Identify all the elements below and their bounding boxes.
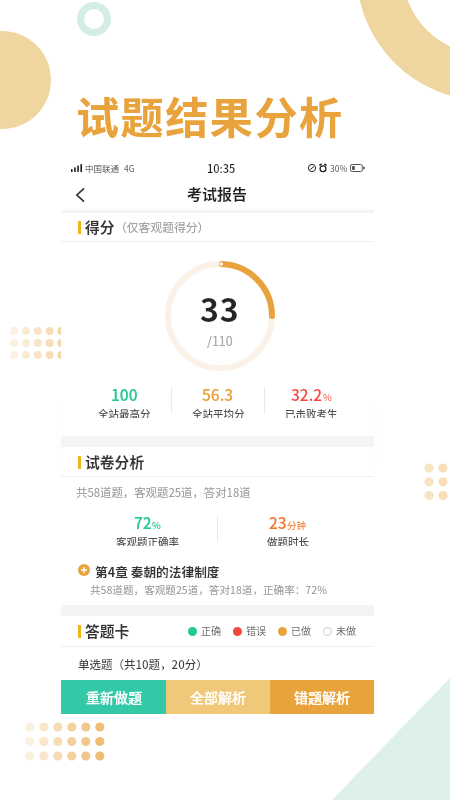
- staticText: 试卷分析: [85, 451, 145, 472]
- staticText: 错误: [246, 623, 267, 638]
- staticText: 已做: [291, 623, 312, 638]
- staticText: 中国联通: [85, 162, 120, 174]
- staticText: 分钟: [287, 518, 307, 532]
- staticText: 共58道题，客观题25道，答对18道，正确率：72%: [90, 582, 327, 597]
- button[interactable]: 重新做题: [61, 680, 166, 714]
- staticText: 正确: [201, 623, 222, 638]
- staticText: 32.2: [291, 383, 323, 405]
- staticText: 客观题正确率: [116, 534, 179, 546]
- staticText: 56.3: [202, 383, 234, 405]
- staticText: 33: [200, 285, 240, 331]
- staticText: 未做: [336, 623, 357, 638]
- staticText: 30%: [330, 162, 348, 174]
- staticText: 10:35: [207, 160, 236, 176]
- staticText: 答题卡: [85, 620, 130, 641]
- staticText: 做题时长: [267, 534, 309, 546]
- staticText: 试题结果分析: [76, 84, 344, 146]
- staticText: 得分: [85, 216, 115, 237]
- staticText: （仅客观题得分）: [115, 218, 210, 235]
- staticText: 全部解析: [190, 687, 246, 707]
- staticText: 72: [134, 511, 152, 533]
- staticText: 单选题（共10题，20分）: [78, 656, 208, 673]
- staticText: 错题解析: [294, 687, 350, 707]
- staticText: 共58道题，客观题25道，答对18道: [76, 484, 251, 501]
- staticText: 23: [269, 511, 287, 533]
- staticText: 第4章 秦朝的法律制度: [95, 562, 220, 578]
- staticText: 4G: [124, 162, 135, 174]
- button[interactable]: 第4章 秦朝的法律制度: [78, 562, 220, 578]
- staticText: 全站平均分: [192, 406, 245, 418]
- staticText: %: [323, 390, 332, 404]
- staticText: 全站最高分: [98, 406, 151, 418]
- staticText: %: [152, 518, 161, 532]
- staticText: 重新做题: [86, 687, 142, 707]
- staticText: 考试报告: [187, 183, 248, 205]
- button[interactable]: Back: [66, 181, 94, 209]
- staticText: /110: [207, 331, 233, 349]
- button[interactable]: 错题解析: [270, 680, 374, 714]
- staticText: 已击败考生: [285, 406, 338, 418]
- staticText: 100: [111, 383, 138, 405]
- button[interactable]: 全部解析: [166, 680, 270, 714]
